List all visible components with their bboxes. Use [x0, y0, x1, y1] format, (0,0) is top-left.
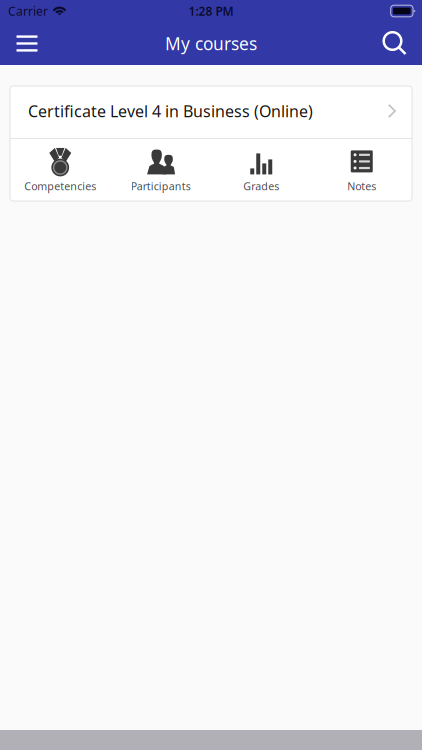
staticText: Participants: [131, 179, 191, 193]
staticText: Certificate Level 4 in Business (Online): [28, 100, 313, 122]
button[interactable]: Menu: [0, 21, 54, 65]
staticText: My courses: [165, 32, 257, 55]
button[interactable]: Grades: [211, 137, 311, 203]
staticText: Grades: [243, 179, 279, 193]
staticText: Carrier: [8, 3, 48, 19]
button[interactable]: Notes: [311, 137, 412, 203]
staticText: 1:28 PM: [188, 3, 233, 19]
staticText: Notes: [347, 179, 376, 193]
button[interactable]: Certificate Level 4 in Business (Online): [10, 86, 412, 138]
button[interactable]: Competencies: [10, 137, 110, 203]
button[interactable]: Search: [368, 21, 422, 65]
staticText: Competencies: [24, 179, 96, 193]
button[interactable]: Participants: [110, 137, 211, 203]
